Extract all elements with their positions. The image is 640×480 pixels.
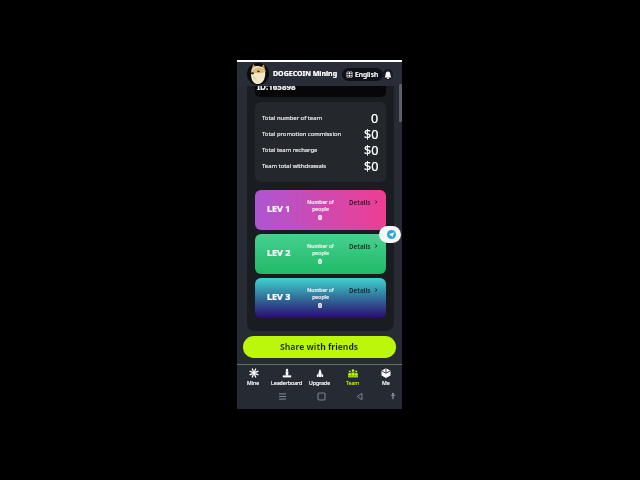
button[interactable]: Team (336, 365, 369, 388)
staticText: DOGECOIN Mining (273, 69, 338, 79)
staticText: 0 (318, 213, 323, 223)
staticText: Leaderboard (271, 379, 303, 386)
staticText: ID:165898 (257, 86, 296, 92)
button[interactable]: Me (369, 365, 402, 388)
button[interactable]: Notifications (383, 69, 393, 80)
staticText: Details (349, 198, 371, 206)
staticText: Number of people (307, 286, 334, 300)
staticText: Total promotion commission (262, 130, 342, 138)
button[interactable]: English (342, 68, 383, 81)
button[interactable]: Mine (237, 365, 270, 388)
staticText: LEV 3 (267, 290, 291, 302)
staticText: Team total withdrawals (262, 162, 327, 170)
staticText: Details (349, 242, 371, 250)
staticText: $0 (364, 126, 379, 142)
staticText: Mine (247, 379, 260, 386)
button[interactable]: Share with friends (243, 336, 396, 358)
staticText: Team (346, 379, 360, 386)
button[interactable]: Telegram (379, 226, 401, 243)
button[interactable]: LEV 3 (255, 278, 386, 318)
staticText: LEV 1 (267, 202, 291, 214)
button[interactable]: Leaderboard (270, 365, 303, 388)
staticText: Total number of team (262, 114, 322, 122)
staticText: Details (349, 286, 371, 294)
staticText: Upgrade (309, 379, 331, 386)
button[interactable]: LEV 2 (255, 234, 386, 274)
staticText: Number of people (307, 242, 334, 256)
staticText: $0 (364, 142, 379, 158)
staticText: 0 (318, 301, 323, 311)
staticText: LEV 2 (267, 246, 291, 258)
button[interactable]: Upgrade (303, 365, 336, 388)
staticText: Total team recharge (262, 146, 318, 154)
staticText: 0 (371, 110, 379, 126)
staticText: English (355, 70, 379, 79)
button[interactable]: LEV 1 (255, 190, 386, 230)
staticText: 0 (318, 257, 323, 267)
staticText: Share with friends (280, 341, 359, 353)
staticText: Me (382, 379, 390, 386)
staticText: Number of people (307, 198, 334, 212)
staticText: $0 (364, 158, 379, 174)
